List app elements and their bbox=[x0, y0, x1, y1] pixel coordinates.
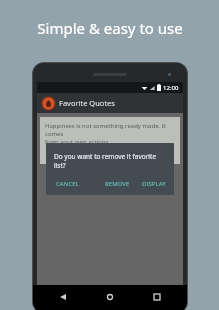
staticText: 12:00 bbox=[163, 84, 179, 92]
button[interactable]: DISPLAY bbox=[140, 179, 168, 189]
staticText: REMOVE bbox=[105, 180, 130, 188]
button[interactable]: REMOVE bbox=[103, 179, 132, 189]
staticText: Happiness is not something ready made. I… bbox=[45, 122, 175, 146]
button[interactable]: Back bbox=[55, 289, 71, 305]
button[interactable]: CANCEL bbox=[54, 179, 81, 189]
button[interactable]: Recent apps bbox=[149, 289, 165, 305]
staticText: Favorite Quotes bbox=[59, 98, 115, 108]
staticText: CANCEL bbox=[56, 180, 79, 188]
staticText: DISPLAY bbox=[142, 180, 166, 188]
staticText: Do you want to remove it favorite list? bbox=[54, 152, 168, 170]
button[interactable]: Home bbox=[102, 289, 118, 305]
staticText: —Dalai Lama bbox=[45, 151, 83, 159]
staticText: Simple & easy to use bbox=[37, 18, 183, 38]
